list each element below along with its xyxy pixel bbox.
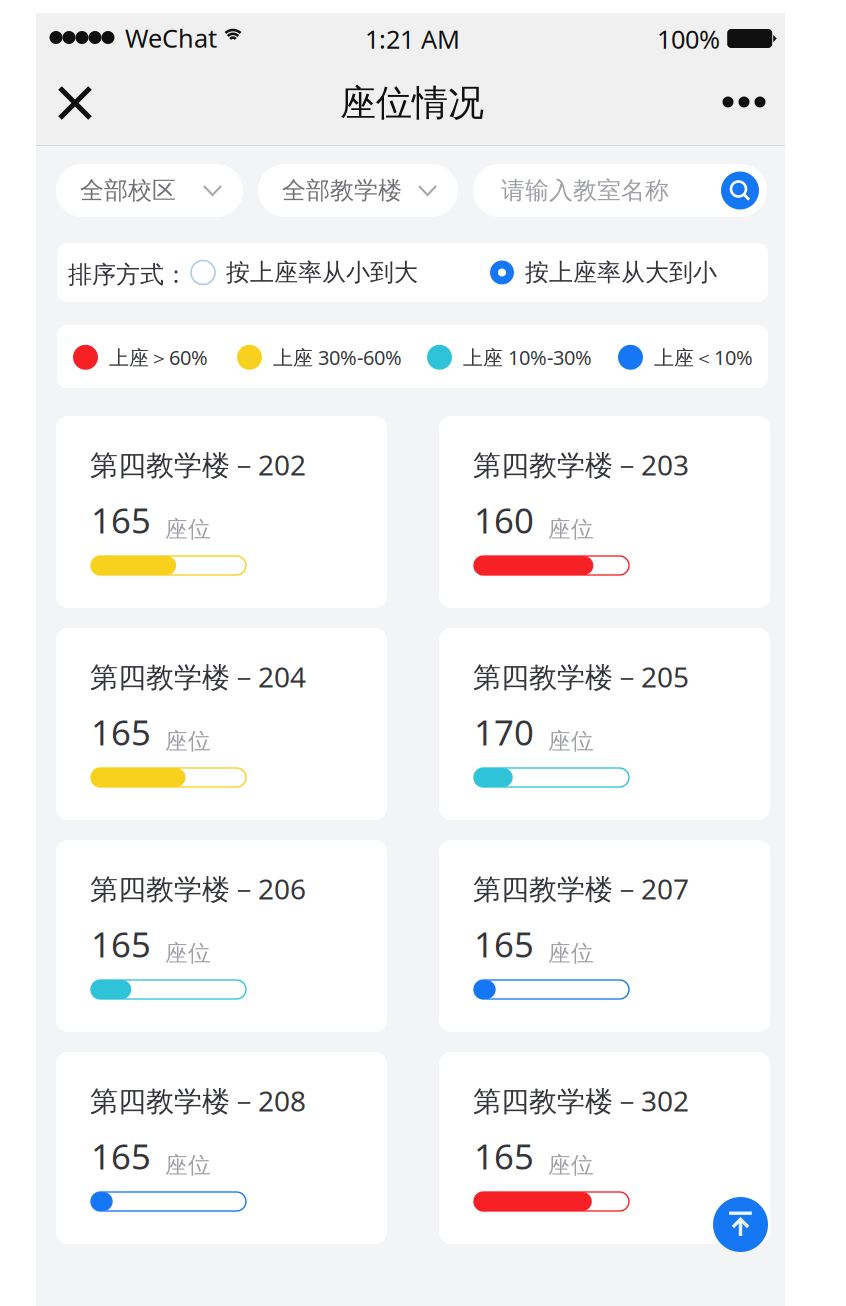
- staticText: 1:21 AM: [365, 22, 460, 56]
- button[interactable]: 请输入教室名称: [473, 164, 767, 217]
- staticText: 165: [91, 497, 151, 543]
- staticText: 按上座率从大到小: [525, 258, 717, 287]
- staticText: 上座＞60%: [109, 344, 208, 371]
- button[interactable]: 按上座率从大到小: [484, 250, 723, 295]
- staticText: 请输入教室名称: [501, 176, 669, 205]
- staticText: 上座 10%-30%: [463, 344, 592, 371]
- button[interactable]: 第四教学楼－207: [439, 840, 770, 1032]
- button[interactable]: Close: [41, 69, 109, 137]
- staticText: 座位: [548, 939, 594, 967]
- staticText: 170: [474, 709, 534, 755]
- staticText: 165: [474, 1133, 534, 1179]
- staticText: 第四教学楼－207: [473, 870, 689, 907]
- button[interactable]: 第四教学楼－302: [439, 1052, 770, 1244]
- staticText: 第四教学楼－204: [90, 658, 306, 695]
- button[interactable]: 第四教学楼－204: [56, 628, 387, 820]
- staticText: 160: [474, 497, 534, 543]
- staticText: 上座＜10%: [654, 344, 753, 371]
- staticText: 排序方式：: [68, 260, 188, 289]
- staticText: 上座 30%-60%: [273, 344, 402, 371]
- staticText: 165: [474, 921, 534, 967]
- button[interactable]: 按上座率从小到大: [185, 250, 424, 295]
- button[interactable]: Scroll to top: [713, 1197, 768, 1252]
- staticText: 按上座率从小到大: [226, 258, 418, 287]
- staticText: 座位: [165, 727, 211, 755]
- staticText: 座位: [548, 515, 594, 543]
- button[interactable]: More: [709, 68, 779, 136]
- staticText: 165: [91, 921, 151, 967]
- staticText: 第四教学楼－202: [90, 446, 306, 483]
- staticText: 座位: [548, 1151, 594, 1179]
- staticText: 第四教学楼－206: [90, 870, 306, 907]
- button[interactable]: 第四教学楼－203: [439, 416, 770, 608]
- button[interactable]: 第四教学楼－208: [56, 1052, 387, 1244]
- staticText: 座位: [165, 1151, 211, 1179]
- staticText: 座位情况: [340, 81, 484, 125]
- staticText: 第四教学楼－302: [473, 1082, 689, 1119]
- staticText: 座位: [548, 727, 594, 755]
- staticText: 第四教学楼－205: [473, 658, 689, 695]
- staticText: 165: [91, 1133, 151, 1179]
- staticText: 座位: [165, 515, 211, 543]
- staticText: 第四教学楼－208: [90, 1082, 306, 1119]
- staticText: 座位: [165, 939, 211, 967]
- staticText: 全部教学楼: [282, 176, 402, 205]
- staticText: 100%: [657, 22, 720, 56]
- staticText: 全部校区: [80, 176, 176, 205]
- button[interactable]: 第四教学楼－206: [56, 840, 387, 1032]
- button[interactable]: 全部校区: [56, 164, 243, 217]
- staticText: 第四教学楼－203: [473, 446, 689, 483]
- button[interactable]: 第四教学楼－205: [439, 628, 770, 820]
- staticText: 165: [91, 709, 151, 755]
- staticText: WeChat: [125, 21, 217, 55]
- button[interactable]: 第四教学楼－202: [56, 416, 387, 608]
- button[interactable]: 全部教学楼: [258, 164, 458, 217]
